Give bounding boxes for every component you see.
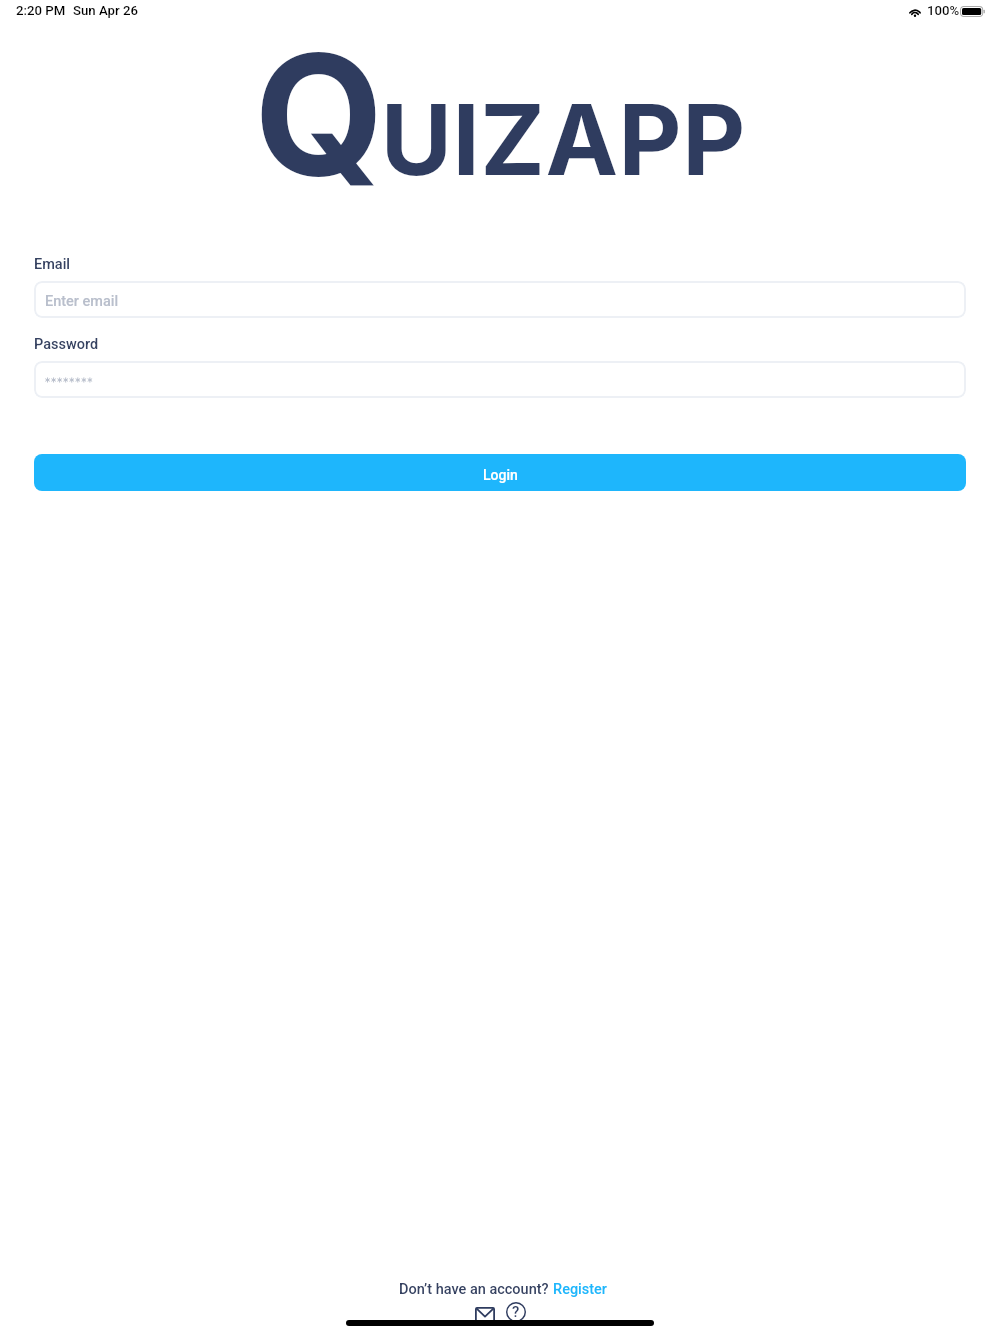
staticText: 100% [927,3,960,18]
staticText: ? [512,1303,520,1321]
staticText: QUIZAPP [254,13,746,216]
staticText: Enter email [45,293,119,310]
staticText: Sun Apr 26 [73,3,138,18]
button[interactable]: Enter email [34,281,966,318]
staticText: Email [34,256,71,273]
staticText: Password [34,336,99,353]
staticText: Login [483,467,518,483]
staticText: Don’t have an account? [399,1281,553,1298]
button[interactable] [34,361,966,398]
staticText: Register [553,1281,607,1298]
button[interactable]: Register [553,1281,607,1298]
button[interactable]: Login [34,454,966,491]
button[interactable]: Mail [473,1304,497,1324]
staticText: 2:20 PM [16,3,66,18]
button[interactable]: Help [503,1300,528,1324]
